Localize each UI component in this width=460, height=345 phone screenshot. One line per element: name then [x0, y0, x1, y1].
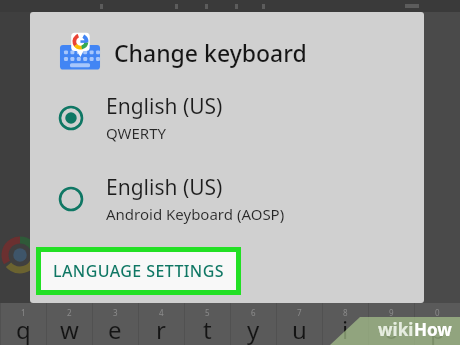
staticText: y — [247, 313, 260, 345]
staticText: o — [384, 313, 399, 345]
staticText: English (US) — [106, 173, 223, 202]
staticText: 2 — [67, 307, 72, 318]
staticText: 6 — [251, 307, 256, 318]
staticText: wiki — [378, 318, 414, 341]
staticText: Change keyboard — [114, 37, 307, 68]
staticText: i — [342, 313, 349, 345]
staticText: 4 — [159, 307, 164, 318]
staticText: LANGUAGE SETTINGS — [53, 260, 224, 282]
staticText: q — [16, 313, 31, 345]
staticText: 9 — [389, 307, 394, 318]
staticText: English (US) — [106, 92, 223, 121]
staticText: 0 — [435, 307, 440, 318]
staticText: r — [156, 313, 166, 345]
staticText: e — [108, 313, 122, 345]
button[interactable]: English (US) — [30, 88, 424, 147]
staticText: QWERTY — [106, 123, 167, 143]
staticText: How — [414, 318, 452, 341]
staticText: w — [60, 313, 79, 345]
staticText: 1 — [21, 307, 26, 318]
staticText: 7 — [297, 307, 302, 318]
staticText: t — [203, 313, 212, 345]
staticText: 8 — [343, 307, 348, 318]
staticText: Android Keyboard (AOSP) — [106, 204, 285, 224]
staticText: 5 — [205, 307, 210, 318]
staticText: 3 — [113, 307, 118, 318]
staticText: p — [430, 313, 445, 345]
button[interactable]: English (US) — [30, 169, 424, 228]
staticText: u — [292, 313, 307, 345]
button[interactable]: LANGUAGE SETTINGS — [41, 252, 236, 290]
